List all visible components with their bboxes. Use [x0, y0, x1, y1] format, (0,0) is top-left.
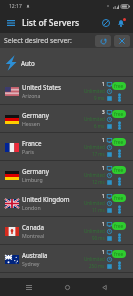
staticText: 1 — [102, 221, 105, 227]
staticText: Limburg — [22, 176, 43, 183]
staticText: 9 ms — [94, 95, 105, 101]
staticText: 1 — [102, 81, 105, 87]
staticText: Germany — [22, 111, 49, 119]
staticText: Unlimited — [84, 88, 105, 94]
staticText: 3 — [102, 109, 105, 115]
staticText: Montreal — [22, 232, 45, 239]
staticText: free — [114, 83, 124, 90]
button[interactable]: Germany — [0, 105, 133, 133]
button[interactable]: More options — [114, 91, 125, 103]
staticText: Select desired server: — [4, 36, 72, 45]
staticText: United Kingdom — [22, 195, 70, 203]
staticText: Sydney — [22, 260, 40, 267]
staticText: 1 — [102, 249, 105, 255]
button[interactable]: United States — [0, 77, 133, 105]
staticText: Germany — [22, 167, 49, 175]
button[interactable]: Recents — [20, 278, 38, 296]
staticText: London — [22, 204, 41, 211]
button[interactable]: free — [112, 222, 126, 230]
button[interactable]: More options — [114, 119, 125, 131]
staticText: free — [114, 195, 124, 202]
button[interactable]: free — [112, 82, 126, 90]
staticText: 17 ms — [92, 151, 105, 157]
button[interactable]: free — [112, 138, 126, 146]
staticText: 250 ms — [89, 263, 105, 269]
staticText: free — [114, 167, 124, 174]
button[interactable]: Australia — [0, 245, 133, 273]
button[interactable]: More options — [114, 175, 125, 187]
staticText: Canada — [22, 223, 44, 231]
button[interactable]: free — [112, 194, 126, 202]
button[interactable]: Disconnect — [98, 15, 113, 30]
button[interactable]: Home — [58, 278, 76, 296]
button[interactable]: free — [112, 110, 126, 118]
staticText: Hessen — [22, 120, 40, 127]
staticText: Unlimited — [84, 200, 105, 206]
button[interactable]: free — [112, 250, 126, 258]
staticText: 11 ms — [92, 207, 105, 213]
staticText: 6 ms — [94, 123, 105, 129]
staticText: 12 ms — [92, 179, 105, 185]
button[interactable]: free — [112, 166, 126, 174]
staticText: 1 — [102, 193, 105, 199]
staticText: 12:17 — [9, 3, 22, 10]
button[interactable]: Canada — [0, 217, 133, 245]
button[interactable]: Auto — [0, 48, 133, 77]
staticText: Paris — [22, 148, 35, 155]
button[interactable]: Back — [95, 278, 113, 296]
staticText: Arizona — [22, 92, 41, 99]
button[interactable]: Clear — [114, 35, 130, 47]
staticText: France — [22, 139, 42, 147]
button[interactable]: More options — [114, 147, 125, 159]
staticText: 1 — [102, 165, 105, 171]
staticText: Unlimited — [84, 116, 105, 122]
staticText: Auto — [21, 59, 35, 67]
staticText: free — [114, 251, 124, 258]
button[interactable]: More options — [114, 231, 125, 243]
staticText: Unlimited — [84, 228, 105, 234]
button[interactable]: Notifications — [113, 15, 128, 30]
staticText: List of Servers — [22, 17, 80, 29]
staticText: 1 — [102, 137, 105, 143]
button[interactable]: Refresh — [95, 35, 111, 47]
button[interactable]: Menu — [3, 15, 19, 31]
staticText: free — [114, 111, 124, 118]
staticText: free — [114, 139, 124, 146]
button[interactable]: Germany — [0, 161, 133, 189]
button[interactable]: United Kingdom — [0, 189, 133, 217]
button[interactable]: More options — [114, 259, 125, 271]
staticText: free — [114, 223, 124, 230]
button[interactable]: More options — [114, 203, 125, 215]
staticText: Australia — [22, 251, 48, 259]
staticText: Unlimited — [84, 144, 105, 150]
staticText: 90 ms — [92, 235, 105, 241]
button[interactable]: France — [0, 133, 133, 161]
staticText: Unlimited — [84, 256, 105, 262]
staticText: United States — [22, 83, 61, 91]
staticText: Unlimited — [84, 172, 105, 178]
